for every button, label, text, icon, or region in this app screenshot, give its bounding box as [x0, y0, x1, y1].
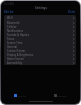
- button[interactable]: Accessibility: [4, 61, 76, 65]
- button[interactable]: Done: [68, 10, 76, 14]
- staticText: Wi-Fi: [7, 16, 14, 20]
- staticText: Display & Brightness: [7, 53, 34, 57]
- staticText: Library: [18, 94, 27, 97]
- staticText: Cellular: [7, 25, 17, 29]
- staticText: Browse: [58, 94, 67, 97]
- staticText: Bluetooth: [7, 21, 20, 25]
- staticText: Notifications: [7, 29, 23, 33]
- button[interactable]: Library: [1, 91, 40, 100]
- button[interactable]: Cellular: [4, 25, 76, 29]
- staticText: Settings: [35, 6, 47, 10]
- button[interactable]: Notifications: [4, 29, 76, 33]
- staticText: Done: [68, 10, 76, 14]
- button[interactable]: Browse: [40, 91, 80, 100]
- button[interactable]: Bluetooth: [4, 20, 76, 25]
- button[interactable]: Control Center: [4, 49, 76, 53]
- staticText: Focus: [7, 37, 15, 41]
- staticText: Sounds & Haptics: [7, 33, 30, 37]
- button[interactable]: Display & Brightness: [4, 53, 76, 57]
- button[interactable]: Edit list: [4, 10, 14, 14]
- button[interactable]: Home Screen: [4, 57, 76, 61]
- staticText: 9:41 AM: [4, 2, 14, 5]
- staticText: Accessibility: [7, 61, 23, 65]
- staticText: Home Screen: [7, 57, 24, 61]
- staticText: Screen Time: [7, 41, 23, 45]
- button[interactable]: Wi-Fi: [4, 15, 76, 20]
- button[interactable]: Sounds & Haptics: [4, 33, 76, 37]
- button[interactable]: General: [4, 45, 76, 49]
- button[interactable]: Focus: [4, 37, 76, 41]
- staticText: Edit list: [4, 10, 14, 14]
- staticText: Control Center: [7, 49, 26, 53]
- staticText: General: [7, 45, 17, 49]
- button[interactable]: Screen Time: [4, 41, 76, 45]
